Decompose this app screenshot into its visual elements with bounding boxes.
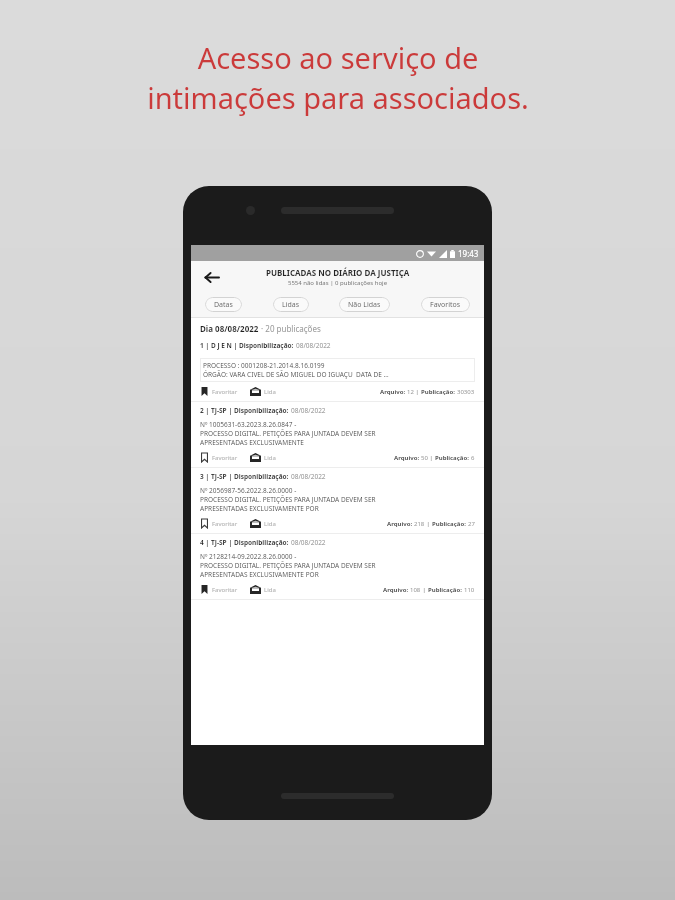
staticText: Datas bbox=[214, 300, 233, 310]
staticText: | Disponibilização: bbox=[227, 538, 291, 547]
button[interactable]: Favoritar bbox=[200, 585, 238, 594]
staticText: 1 | bbox=[200, 341, 211, 350]
staticText: Publicação: bbox=[435, 454, 471, 462]
staticText: PUBLICADAS NO DIÁRIO DA JUSTIÇA bbox=[266, 267, 410, 278]
staticText: | Disponibilização: bbox=[227, 406, 291, 415]
staticText: Lida bbox=[264, 520, 276, 528]
staticText: TJ-SP bbox=[211, 538, 227, 547]
staticText: Nº 1005631-63.2023.8.26.0847 - PROCESSO … bbox=[200, 420, 376, 447]
button[interactable]: Voltar bbox=[199, 265, 223, 289]
staticText: Favoritar bbox=[212, 454, 238, 462]
staticText: 08/08/2022 bbox=[291, 538, 326, 547]
staticText: Nº 2056987-56.2022.8.26.0000 - PROCESSO … bbox=[200, 486, 376, 513]
staticText: | bbox=[425, 520, 432, 528]
staticText: | bbox=[428, 454, 435, 462]
staticText: Acesso ao serviço de intimações para ass… bbox=[147, 38, 529, 118]
staticText: 218 bbox=[414, 520, 425, 528]
staticText: Arquivo: bbox=[380, 388, 407, 396]
staticText: Favoritar bbox=[212, 388, 238, 396]
button[interactable]: 3 | bbox=[191, 468, 484, 533]
staticText: Não Lidas bbox=[348, 300, 381, 310]
staticText: | Disponibilização: bbox=[232, 341, 296, 350]
staticText: · 20 publicações bbox=[259, 323, 321, 334]
staticText: 19:43 bbox=[458, 248, 479, 259]
staticText: D J E N bbox=[211, 341, 232, 350]
button[interactable]: Favoritos bbox=[421, 297, 470, 312]
staticText: Arquivo: bbox=[383, 586, 410, 594]
staticText: Publicação: bbox=[421, 388, 457, 396]
staticText: 2 | bbox=[200, 406, 211, 415]
staticText: Favoritar bbox=[212, 520, 238, 528]
staticText: 08/08/2022 bbox=[296, 341, 331, 350]
staticText: 08/08/2022 bbox=[291, 472, 326, 481]
staticText: 108 bbox=[410, 586, 421, 594]
button[interactable]: Favoritar bbox=[200, 453, 238, 462]
staticText: 30303 bbox=[457, 388, 475, 396]
staticText: Lida bbox=[264, 388, 276, 396]
button[interactable]: 1 | bbox=[191, 337, 484, 401]
staticText: Publicação: bbox=[428, 586, 464, 594]
staticText: Lida bbox=[264, 454, 276, 462]
button[interactable]: 2 | bbox=[191, 402, 484, 467]
staticText: TJ-SP bbox=[211, 472, 227, 481]
button[interactable]: Lida bbox=[250, 453, 276, 462]
staticText: 4 | bbox=[200, 538, 211, 547]
staticText: TJ-SP bbox=[211, 406, 227, 415]
button[interactable]: Favoritar bbox=[200, 387, 238, 396]
staticText: 12 bbox=[407, 388, 414, 396]
staticText: | bbox=[421, 586, 428, 594]
button[interactable]: Favoritar bbox=[200, 519, 238, 528]
staticText: Publicação: bbox=[432, 520, 468, 528]
staticText: 110 bbox=[464, 586, 475, 594]
button[interactable]: Não Lidas bbox=[339, 297, 390, 312]
staticText: Dia 08/08/2022 bbox=[200, 323, 259, 334]
button[interactable]: Lida bbox=[250, 519, 276, 528]
staticText: Arquivo: bbox=[387, 520, 414, 528]
staticText: PROCESSO : 0001208-21.2014.8.16.0199 ÓRG… bbox=[203, 361, 389, 379]
staticText: Favoritos bbox=[430, 300, 461, 310]
button[interactable]: Lida bbox=[250, 387, 276, 396]
button[interactable]: Datas bbox=[205, 297, 242, 312]
staticText: 5554 não lidas | 0 publicações hoje bbox=[288, 279, 388, 287]
button[interactable]: Lida bbox=[250, 585, 276, 594]
staticText: Nº 2128214-09.2022.8.26.0000 - PROCESSO … bbox=[200, 552, 376, 579]
button[interactable]: Lidas bbox=[273, 297, 309, 312]
staticText: | bbox=[414, 388, 421, 396]
staticText: 6 bbox=[471, 454, 475, 462]
staticText: 27 bbox=[468, 520, 475, 528]
staticText: Arquivo: bbox=[394, 454, 421, 462]
staticText: Lidas bbox=[282, 300, 300, 310]
staticText: 08/08/2022 bbox=[291, 406, 326, 415]
staticText: 50 bbox=[421, 454, 428, 462]
staticText: | Disponibilização: bbox=[227, 472, 291, 481]
staticText: 3 | bbox=[200, 472, 211, 481]
staticText: Favoritar bbox=[212, 586, 238, 594]
button[interactable]: 4 | bbox=[191, 534, 484, 599]
staticText: Lida bbox=[264, 586, 276, 594]
